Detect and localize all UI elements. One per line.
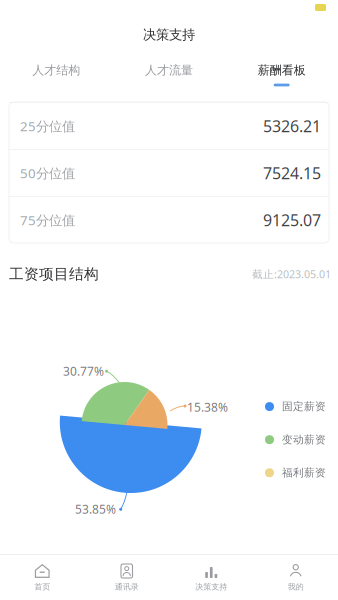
staticText: 5326.21 [263, 115, 321, 137]
staticText: 工资项目结构 [9, 265, 99, 283]
staticText: 30.77% [63, 363, 104, 379]
button[interactable]: 人才流量 [113, 52, 225, 92]
staticText: 变动薪资 [282, 433, 326, 446]
staticText: 决策支持 [195, 582, 227, 592]
staticText: 福利薪资 [282, 466, 326, 479]
staticText: 首页 [34, 582, 50, 592]
staticText: 人才流量 [145, 63, 193, 78]
staticText: 薪酬看板 [258, 63, 306, 78]
staticText: 人才结构 [32, 63, 80, 78]
button[interactable]: 人才结构 [0, 52, 113, 92]
staticText: 9125.07 [263, 209, 321, 231]
staticText: 50分位值 [20, 164, 75, 182]
staticText: 我的 [288, 582, 304, 592]
staticText: 25分位值 [20, 117, 75, 135]
staticText: 截止:2023.05.01 [252, 267, 331, 281]
staticText: 7524.15 [263, 162, 321, 184]
staticText: 固定薪资 [282, 400, 326, 413]
button[interactable]: 通讯录 [84, 555, 169, 600]
button[interactable]: 首页 [0, 555, 84, 600]
button[interactable]: 决策支持 [169, 555, 253, 600]
staticText: 通讯录 [115, 582, 139, 592]
staticText: 15.38% [187, 399, 228, 415]
staticText: 53.85% [75, 501, 116, 517]
button[interactable]: 我的 [253, 555, 338, 600]
staticText: 决策支持 [143, 27, 195, 43]
button[interactable]: 薪酬看板 [225, 52, 338, 92]
staticText: 75分位值 [20, 211, 75, 229]
